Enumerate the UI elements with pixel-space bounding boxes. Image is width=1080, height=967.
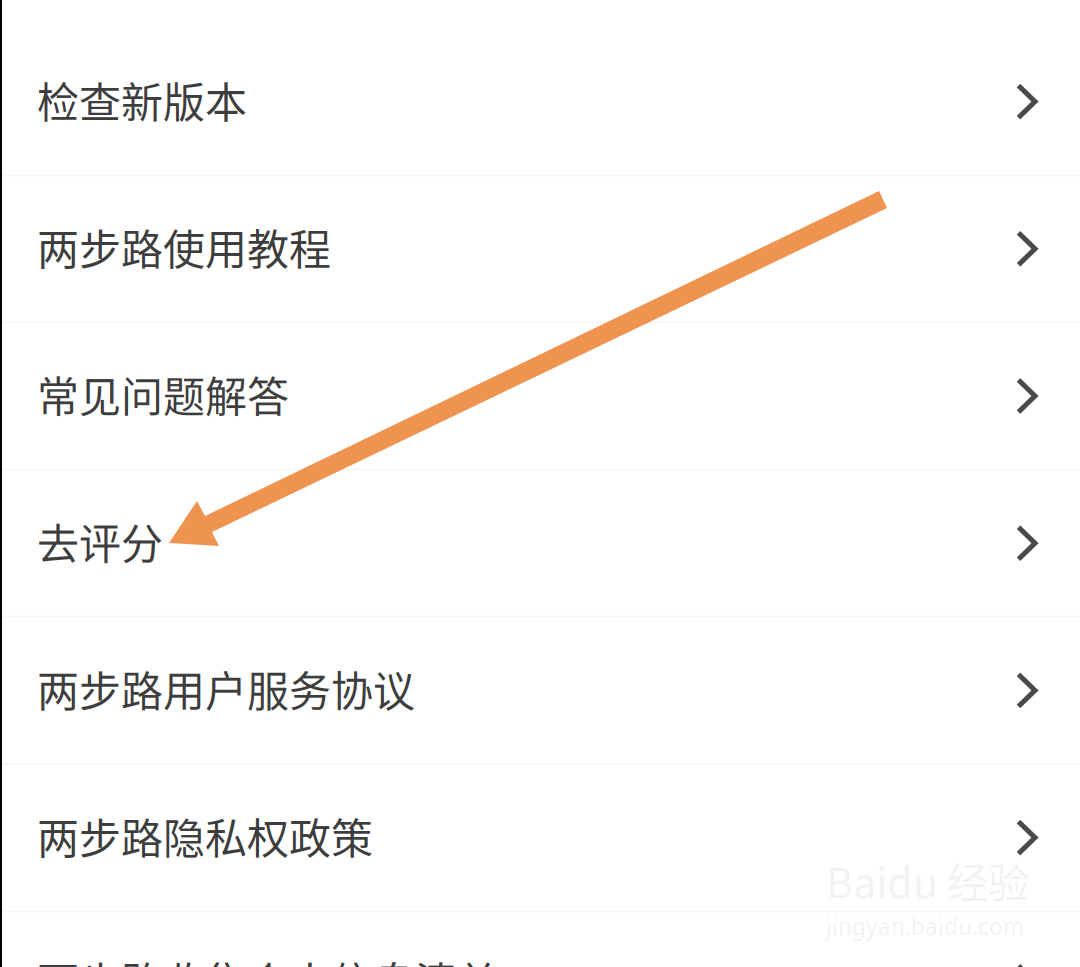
button[interactable]: 两步路使用教程 — [0, 175, 1080, 322]
staticText: 两步路隐私权政策 — [37, 805, 373, 866]
button[interactable]: 两步路用户服务协议 — [0, 617, 1080, 764]
button[interactable]: 常见问题解答 — [0, 322, 1080, 470]
button[interactable]: 两步路隐私权政策 — [0, 764, 1080, 911]
staticText: 两步路使用教程 — [37, 216, 331, 277]
staticText: jingyan.baidu.com — [826, 911, 1024, 942]
staticText: 两步路用户服务协议 — [37, 658, 415, 719]
staticText: 两步路收集个人信息清单 — [37, 949, 499, 967]
button[interactable]: 去评分 — [0, 470, 1080, 617]
button[interactable]: 检查新版本 — [0, 28, 1080, 175]
staticText: Baidu 经验 — [826, 850, 1029, 910]
staticText: 检查新版本 — [37, 69, 247, 130]
staticText: 常见问题解答 — [37, 364, 289, 424]
button[interactable]: 两步路收集个人信息清单 — [0, 908, 1080, 967]
staticText: 去评分 — [37, 511, 163, 572]
